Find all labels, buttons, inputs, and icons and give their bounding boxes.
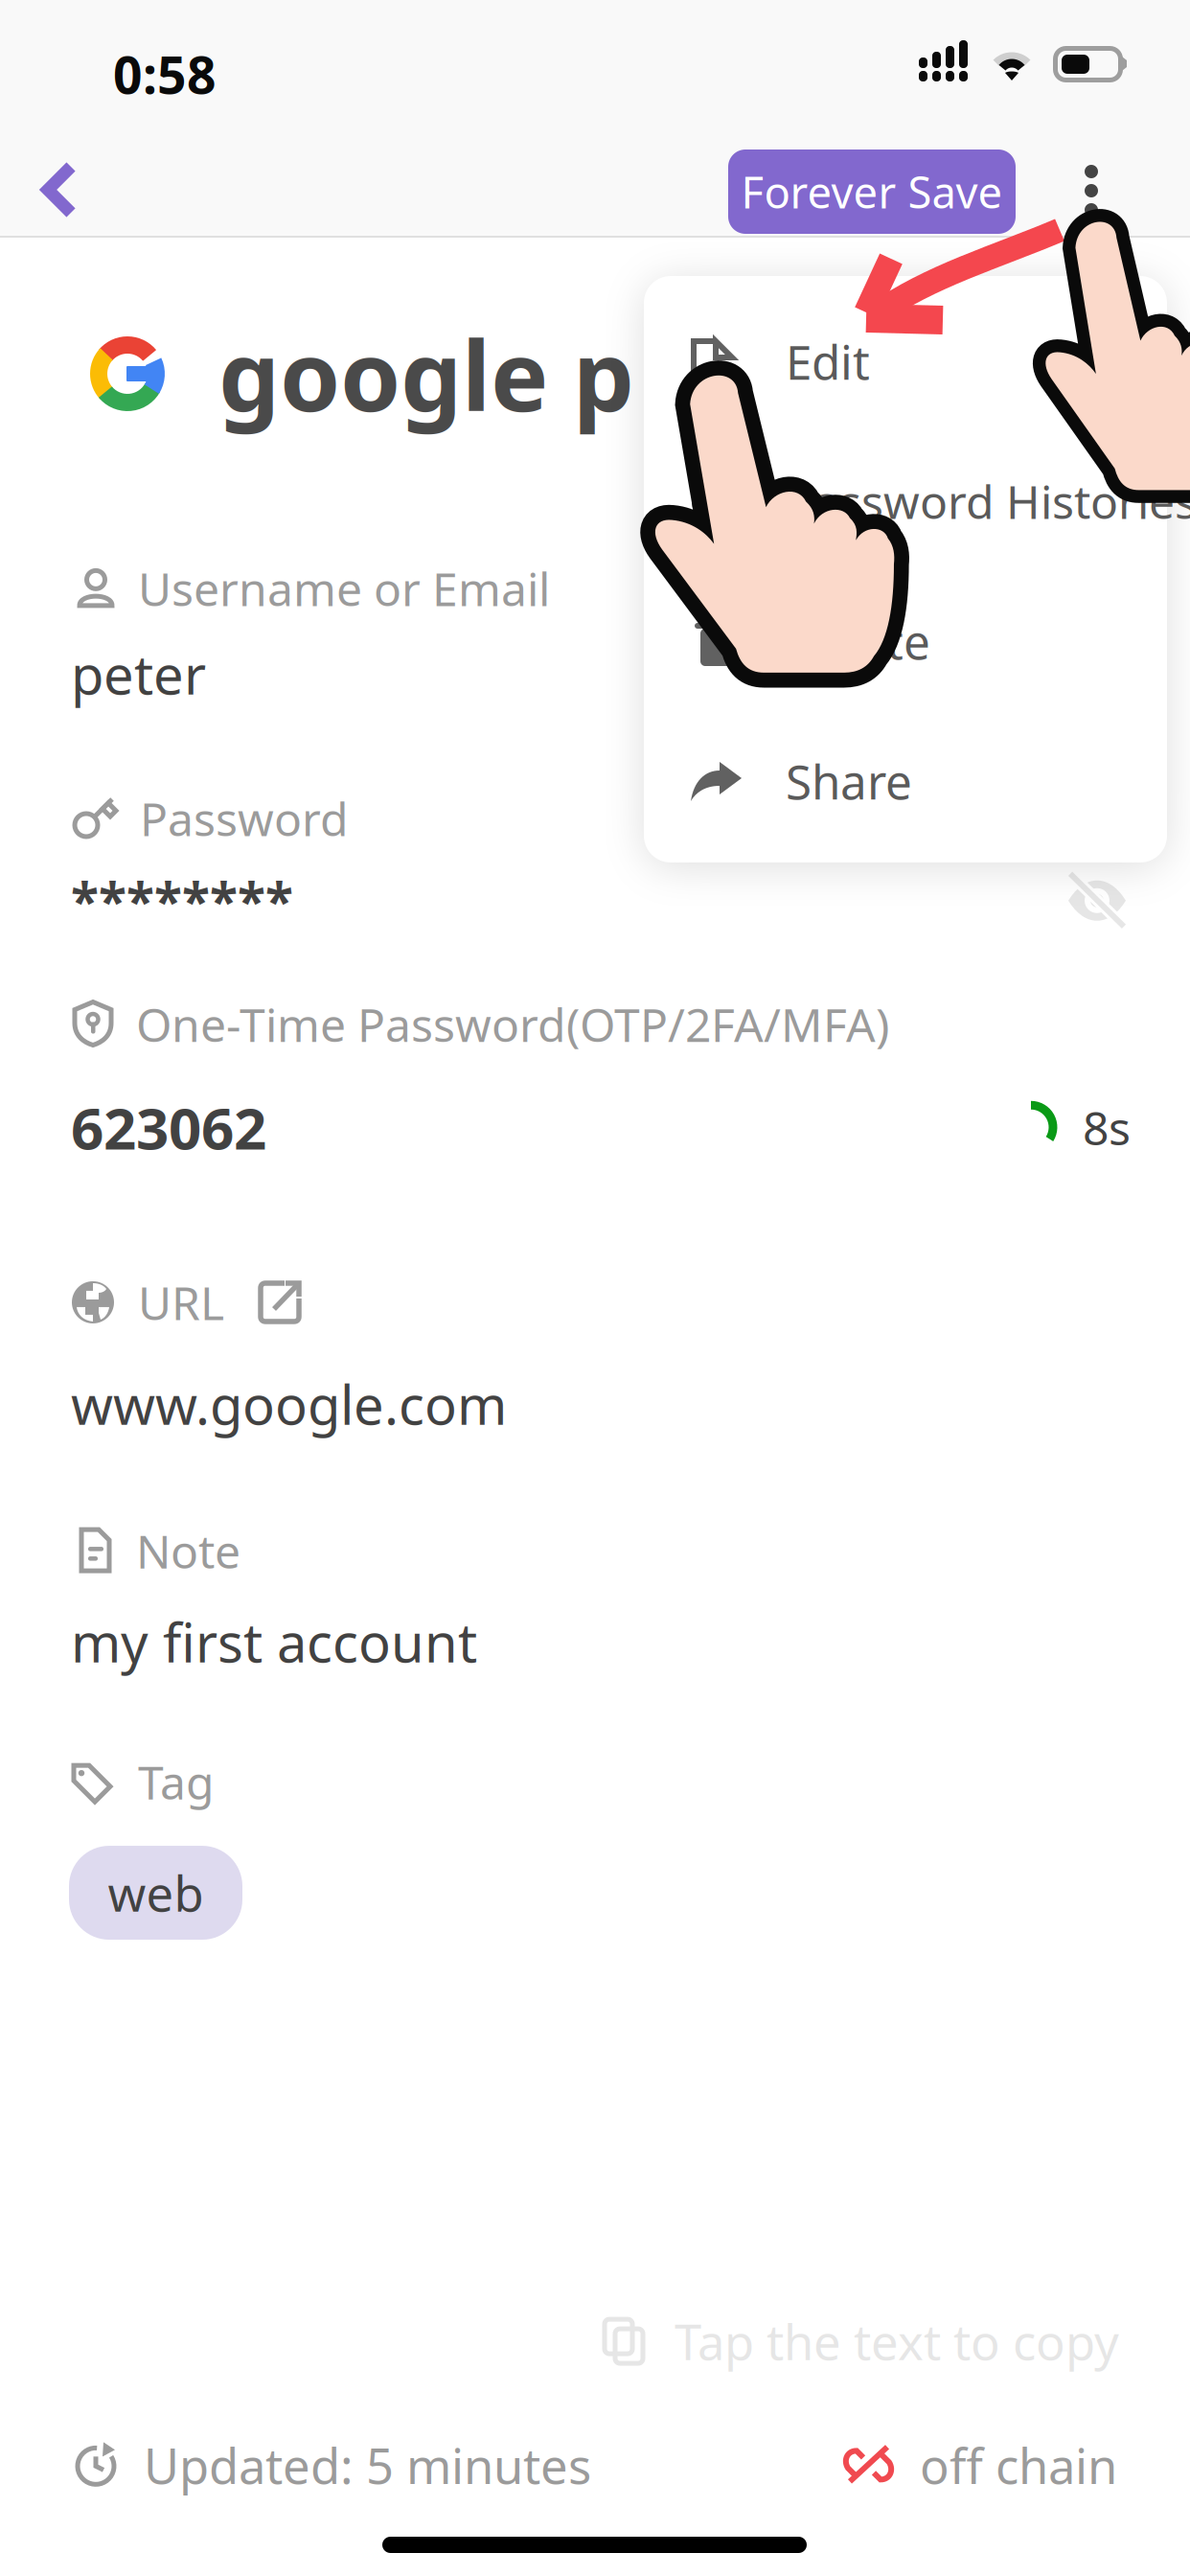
button[interactable]: Edit [644, 291, 1190, 431]
staticText: Tap the text to copy [675, 2309, 1119, 2374]
staticText: 0:58 [113, 40, 217, 108]
button[interactable]: Delete [644, 571, 1190, 711]
staticText: 623062 [71, 1089, 266, 1165]
staticText: Password [140, 788, 349, 849]
button[interactable]: Open URL [257, 1279, 303, 1325]
staticText: Note [136, 1520, 240, 1581]
staticText: Password Histories [786, 471, 1190, 532]
button[interactable]: Forever Save [728, 149, 1016, 234]
staticText: ******** [71, 866, 293, 934]
staticText: off chain [920, 2433, 1117, 2497]
staticText: 8s [1083, 1097, 1131, 1158]
staticText: One-Time Password(OTP/2FA/MFA) [136, 994, 889, 1055]
button[interactable]: Back [3, 131, 118, 248]
staticText: google p [218, 309, 634, 438]
button[interactable]: More options [1041, 119, 1141, 236]
staticText: Share [786, 750, 912, 812]
staticText: www.google.com [71, 1368, 507, 1440]
staticText: Forever Save [741, 163, 1003, 221]
staticText: URL [138, 1272, 224, 1333]
button[interactable]: Share [644, 711, 1190, 851]
staticText: Delete [786, 610, 930, 672]
button[interactable]: Show password [1065, 873, 1129, 927]
staticText: web [108, 1861, 204, 1925]
button[interactable]: Password Histories [644, 431, 1190, 571]
staticText: Username or Email [138, 558, 550, 619]
staticText: Tag [138, 1751, 215, 1812]
button[interactable]: web [69, 1846, 242, 1940]
staticText: Edit [786, 330, 870, 393]
staticText: peter [71, 638, 206, 709]
staticText: my first account [71, 1606, 477, 1677]
staticText: Updated: 5 minutes [144, 2433, 591, 2497]
